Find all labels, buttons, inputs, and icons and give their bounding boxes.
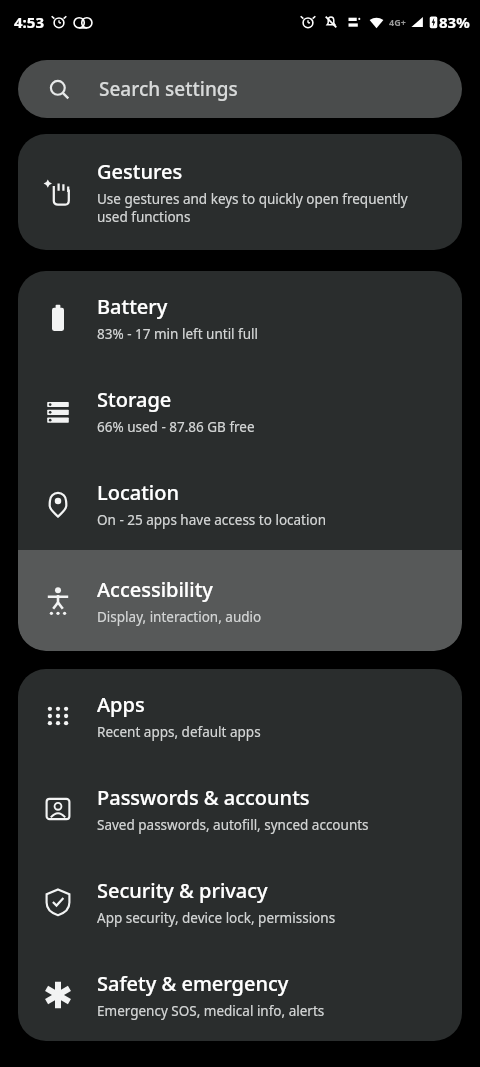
staticText: Display, interaction, audio xyxy=(97,608,262,626)
staticText: Search settings xyxy=(99,76,238,102)
staticText: Use gestures and keys to quickly open fr… xyxy=(97,190,408,226)
staticText: 83% xyxy=(439,12,470,32)
staticText: Storage xyxy=(97,386,172,413)
button[interactable]: Search settings xyxy=(18,60,462,118)
button[interactable]: Accessibility xyxy=(18,550,462,651)
other: Storage xyxy=(43,396,73,426)
staticText: Accessibility xyxy=(97,576,213,603)
other: Battery xyxy=(43,303,73,333)
staticText: Gestures xyxy=(97,158,183,185)
staticText: 66% used - 87.86 GB free xyxy=(97,418,255,436)
button[interactable]: Security and privacy xyxy=(18,855,462,948)
staticText: 4G+ xyxy=(389,16,406,28)
button[interactable]: Storage xyxy=(18,364,462,457)
other: Passwords and accounts xyxy=(43,794,73,824)
button[interactable]: Battery xyxy=(18,271,462,364)
staticText: App security, device lock, permissions xyxy=(97,909,336,927)
staticText: Battery xyxy=(97,293,168,320)
staticText: Safety & emergency xyxy=(97,970,289,997)
staticText: Location xyxy=(97,479,179,506)
staticText: Apps xyxy=(97,691,145,718)
other: Gestures xyxy=(43,177,73,207)
button[interactable]: Location xyxy=(18,457,462,550)
other: Security and privacy xyxy=(43,887,73,917)
staticText: Emergency SOS, medical info, alerts xyxy=(97,1002,325,1020)
other: Location xyxy=(43,489,73,519)
button[interactable]: Apps xyxy=(18,669,462,762)
staticText: Passwords & accounts xyxy=(97,784,310,811)
other: Apps xyxy=(43,701,73,731)
staticText: 4:53 xyxy=(14,12,44,32)
staticText: Security & privacy xyxy=(97,877,268,904)
staticText: On - 25 apps have access to location xyxy=(97,511,326,529)
button[interactable]: Gestures xyxy=(18,134,462,250)
other: Safety and emergency xyxy=(43,980,73,1010)
staticText: 83% - 17 min left until full xyxy=(97,325,259,343)
staticText: Saved passwords, autofill, synced accoun… xyxy=(97,816,369,834)
staticText: Recent apps, default apps xyxy=(97,723,261,741)
button[interactable]: Safety and emergency xyxy=(18,948,462,1041)
other: Accessibility xyxy=(43,586,73,616)
button[interactable]: Passwords and accounts xyxy=(18,762,462,855)
